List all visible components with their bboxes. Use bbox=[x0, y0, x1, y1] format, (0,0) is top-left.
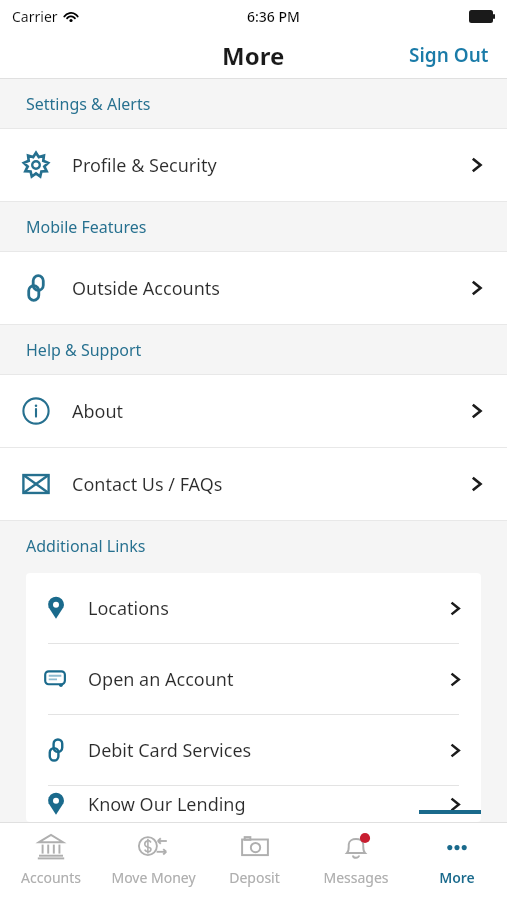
staticText: Move Money bbox=[111, 868, 196, 887]
staticText: Sign Out bbox=[409, 42, 489, 68]
button[interactable]: Accounts bbox=[0, 822, 102, 900]
staticText: Messages bbox=[323, 868, 389, 887]
staticText: Debit Card Services bbox=[88, 738, 252, 763]
button[interactable]: Messages bbox=[305, 822, 406, 900]
staticText: Carrier bbox=[12, 7, 58, 26]
button[interactable]: Know Our Lending bbox=[26, 786, 481, 822]
button[interactable]: Sign Out bbox=[391, 34, 507, 76]
staticText: Locations bbox=[88, 596, 169, 621]
staticText: More bbox=[222, 39, 285, 72]
button[interactable]: Deposit bbox=[204, 822, 305, 900]
staticText: Open an Account bbox=[88, 667, 234, 692]
staticText: Profile & Security bbox=[72, 153, 217, 178]
staticText: Help & Support bbox=[26, 339, 142, 361]
staticText: Settings & Alerts bbox=[26, 93, 151, 115]
staticText: About bbox=[72, 399, 124, 424]
staticText: Know Our Lending bbox=[88, 792, 246, 817]
staticText: More bbox=[439, 868, 475, 887]
staticText: 6:36 PM bbox=[247, 7, 300, 26]
staticText: Mobile Features bbox=[26, 216, 147, 238]
button[interactable]: Contact Us / FAQs bbox=[0, 448, 507, 520]
button[interactable]: About bbox=[0, 375, 507, 447]
button[interactable]: More bbox=[406, 822, 507, 900]
button[interactable]: Move Money bbox=[102, 822, 204, 900]
button[interactable]: Debit Card Services bbox=[26, 715, 481, 785]
staticText: Deposit bbox=[229, 868, 280, 887]
button[interactable]: Open an Account bbox=[26, 644, 481, 714]
staticText: Accounts bbox=[21, 868, 81, 887]
staticText: Outside Accounts bbox=[72, 276, 220, 301]
button[interactable]: Profile & Security bbox=[0, 129, 507, 201]
button[interactable]: Locations bbox=[26, 573, 481, 643]
button[interactable]: Outside Accounts bbox=[0, 252, 507, 324]
staticText: Additional Links bbox=[26, 535, 146, 557]
staticText: Contact Us / FAQs bbox=[72, 472, 223, 497]
